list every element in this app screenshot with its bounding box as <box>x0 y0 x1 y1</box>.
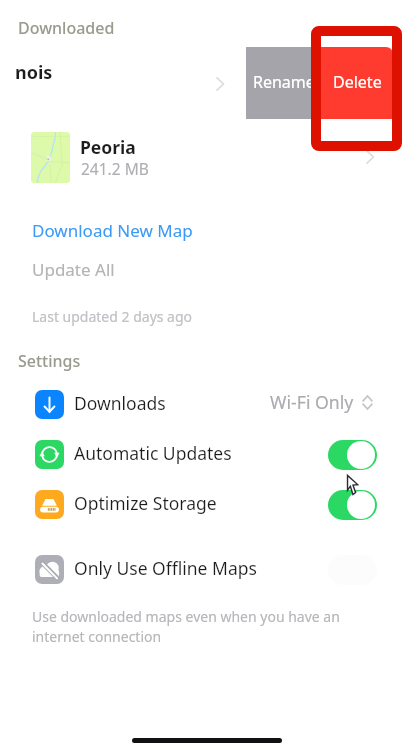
staticText: Peoria <box>80 135 136 159</box>
button[interactable]: Automatic Updates <box>0 430 411 479</box>
staticText: Rename <box>253 71 315 93</box>
button[interactable]: Update All <box>32 258 115 281</box>
staticText: Wi-Fi Only <box>270 390 354 414</box>
staticText: Last updated 2 days ago <box>32 307 193 326</box>
button[interactable]: Peoria <box>0 119 411 187</box>
button[interactable]: Optimize Storage <box>0 480 411 529</box>
staticText: nois <box>15 60 53 85</box>
staticText: 241.2 MB <box>81 158 149 179</box>
staticText: Downloads <box>74 391 166 415</box>
staticText: Settings <box>18 350 81 372</box>
button[interactable]: Delete <box>321 47 393 119</box>
button[interactable]: Rename <box>246 47 321 119</box>
staticText: Optimize Storage <box>74 491 217 515</box>
button[interactable]: Only Use Offline Maps <box>0 545 411 594</box>
button[interactable]: nois <box>0 47 411 119</box>
staticText: Use downloaded maps even when you have a… <box>32 607 340 646</box>
button[interactable]: Download New Map <box>32 219 193 242</box>
staticText: Delete <box>333 71 382 93</box>
button[interactable]: Toggle <box>328 490 377 520</box>
button[interactable]: Downloads <box>0 380 411 429</box>
staticText: Automatic Updates <box>74 441 232 465</box>
button[interactable]: Toggle <box>328 440 377 470</box>
staticText: Only Use Offline Maps <box>74 556 257 580</box>
staticText: Downloaded <box>18 17 115 39</box>
